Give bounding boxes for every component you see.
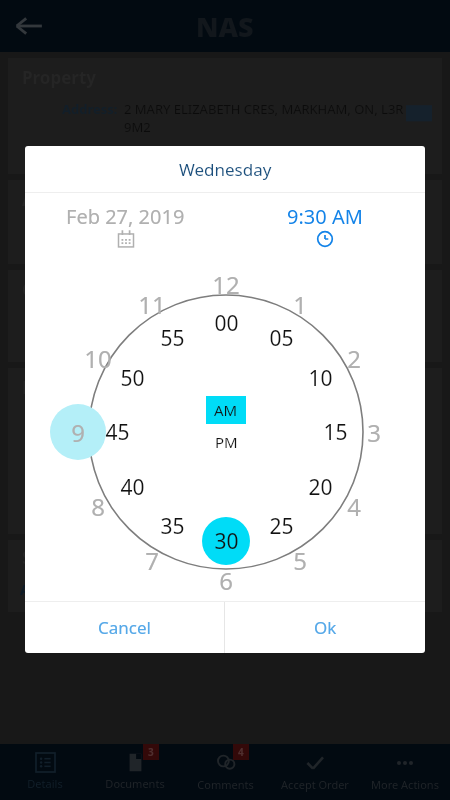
staticText: Comments <box>197 777 254 792</box>
staticText: 9 <box>71 416 85 449</box>
button[interactable]: 7 <box>130 538 174 582</box>
staticText: S <box>22 546 32 569</box>
button[interactable]: Details <box>0 744 90 800</box>
staticText: Schedule Appointment <box>158 580 309 599</box>
staticText: 11 <box>138 288 166 321</box>
staticText: Wednesday <box>179 158 272 181</box>
staticText: 10 <box>308 364 333 393</box>
staticText: Accept Order <box>281 777 349 792</box>
button[interactable]: PM <box>215 432 238 452</box>
staticText: 4 <box>238 745 244 759</box>
button[interactable]: 20 <box>298 465 342 509</box>
button[interactable]: More Actions <box>360 744 450 800</box>
staticText: A <box>22 188 34 211</box>
staticText: C <box>22 278 33 301</box>
button[interactable]: 8 <box>76 484 120 528</box>
button[interactable]: 15 <box>313 410 357 454</box>
button[interactable]: 12 <box>204 262 248 306</box>
staticText: 55 <box>160 324 185 353</box>
staticText: 8 <box>91 490 105 523</box>
staticText: NAS <box>196 8 254 45</box>
staticText: Appointment date: <box>20 580 152 599</box>
staticText: 2 <box>347 342 361 375</box>
staticText: 25 <box>269 512 294 541</box>
staticText: 4 <box>347 490 361 523</box>
button[interactable]: 9 <box>56 410 100 454</box>
button[interactable]: 3 <box>90 744 180 800</box>
button[interactable]: 00 <box>204 301 248 345</box>
staticText: 12 <box>212 268 240 301</box>
staticText: Address: <box>62 100 118 118</box>
button[interactable]: 4 <box>180 744 270 800</box>
button[interactable]: Ok <box>225 602 425 653</box>
staticText: 3 <box>148 745 154 759</box>
staticText: AM <box>214 400 238 420</box>
button[interactable]: AM <box>206 396 246 424</box>
staticText: Property <box>22 66 97 89</box>
button[interactable]: Accept Order <box>270 744 360 800</box>
staticText: 10 <box>84 342 112 375</box>
button[interactable]: 10 <box>76 336 120 380</box>
staticText: 05 <box>269 324 294 353</box>
button[interactable]: 4 <box>332 484 376 528</box>
staticText: 00 <box>214 309 239 338</box>
button[interactable]: Cancel <box>25 602 224 653</box>
staticText: 45 <box>105 418 130 447</box>
staticText: 2 MARY ELIZABETH CRES, MARKHAM, ON, L3R … <box>124 100 406 136</box>
staticText: 7 <box>145 544 159 577</box>
button[interactable]: 55 <box>150 316 194 360</box>
button[interactable]: 25 <box>259 504 303 548</box>
button[interactable]: 11 <box>130 282 174 326</box>
button[interactable]: 1 <box>278 282 322 326</box>
button[interactable]: 50 <box>110 356 154 400</box>
staticText: 30 <box>214 527 239 556</box>
staticText: 20 <box>308 473 333 502</box>
staticText: More Actions <box>371 777 439 792</box>
button[interactable]: 45 <box>95 410 139 454</box>
staticText: Documents <box>105 776 165 791</box>
staticText: 1 <box>293 288 307 321</box>
staticText: 3 <box>367 416 381 449</box>
button[interactable]: 9:30 AM <box>225 193 425 257</box>
staticText: P <box>22 376 33 399</box>
staticText: 35 <box>160 512 185 541</box>
staticText: Ok <box>314 616 337 639</box>
staticText: Feb 27, 2019 <box>66 203 185 230</box>
button[interactable]: 05 <box>259 316 303 360</box>
button[interactable]: 5 <box>278 538 322 582</box>
staticText: 50 <box>120 364 145 393</box>
button[interactable]: 40 <box>110 465 154 509</box>
staticText: Details <box>27 776 63 791</box>
button[interactable]: 2 <box>332 336 376 380</box>
staticText: Cancel <box>98 616 151 639</box>
button[interactable]: Feb 27, 2019 <box>25 193 225 257</box>
staticText: 15 <box>323 418 348 447</box>
button[interactable]: 6 <box>204 558 248 602</box>
button[interactable]: 35 <box>150 504 194 548</box>
staticText: 9:30 AM <box>287 203 363 230</box>
staticText: 6 <box>219 564 233 597</box>
button[interactable]: 10 <box>298 356 342 400</box>
staticText: 5 <box>293 544 307 577</box>
button[interactable]: 3 <box>352 410 396 454</box>
staticText: 40 <box>120 473 145 502</box>
button[interactable]: 30 <box>204 519 248 563</box>
staticText: PM <box>215 432 238 452</box>
button[interactable]: Back <box>6 3 52 49</box>
